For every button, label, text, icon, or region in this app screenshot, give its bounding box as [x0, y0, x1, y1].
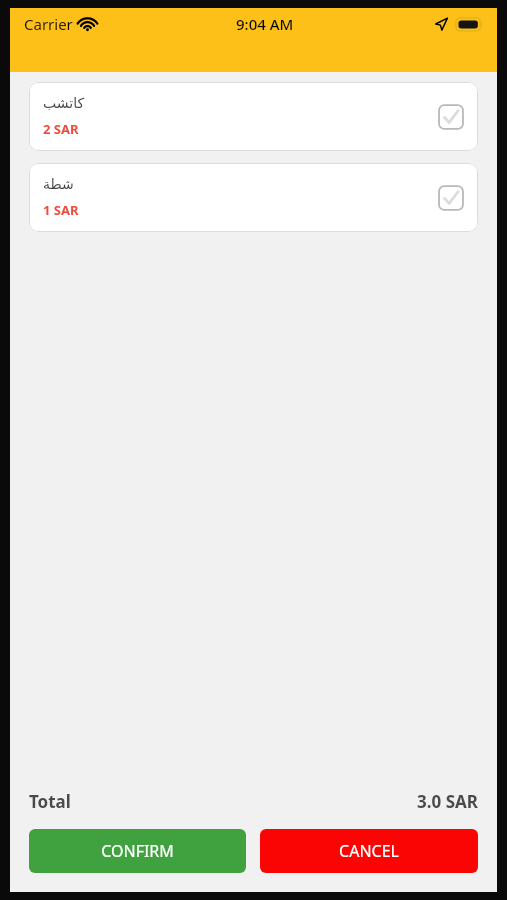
button[interactable]: Toggle item selection — [438, 104, 464, 130]
button[interactable]: CONFIRM — [29, 829, 246, 873]
staticText: Total — [29, 790, 71, 813]
button[interactable]: CANCEL — [260, 829, 478, 873]
staticText: CANCEL — [339, 840, 399, 862]
staticText: 2 SAR — [43, 120, 79, 138]
staticText: كاتشب — [43, 95, 85, 111]
staticText: CONFIRM — [101, 840, 174, 862]
staticText: 1 SAR — [43, 201, 79, 219]
staticText: 3.0 SAR — [417, 790, 478, 813]
button[interactable]: Toggle item selection — [438, 185, 464, 211]
staticText: 9:04 AM — [236, 14, 294, 34]
staticText: Carrier — [24, 14, 73, 34]
button[interactable]: شطة — [29, 163, 478, 232]
button[interactable]: كاتشب — [29, 82, 478, 151]
staticText: شطة — [43, 176, 74, 192]
